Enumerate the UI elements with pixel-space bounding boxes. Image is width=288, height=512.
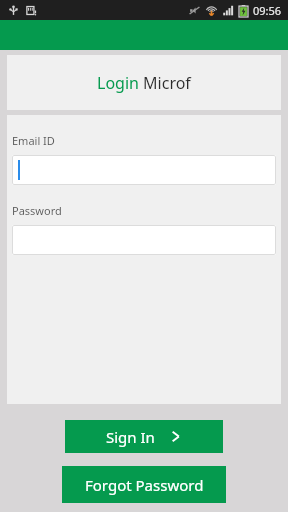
button[interactable] (12, 155, 276, 185)
staticText: Login Microf (97, 72, 191, 94)
button[interactable]: Sign In (65, 420, 223, 453)
staticText: Forgot Password (85, 475, 204, 495)
staticText: 09:56 (253, 3, 282, 18)
staticText: Password (12, 203, 62, 218)
staticText: Email ID (12, 133, 55, 148)
button[interactable]: Forgot Password (62, 466, 226, 503)
button[interactable] (12, 225, 276, 255)
staticText: Sign In (106, 427, 155, 447)
